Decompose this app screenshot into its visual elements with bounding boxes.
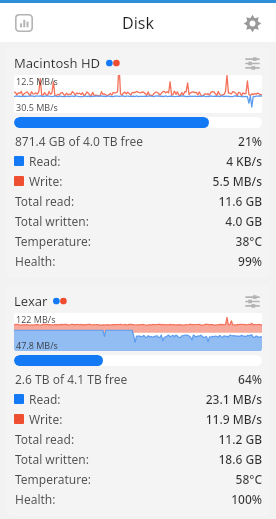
staticText: 11.6 GB: [218, 193, 262, 209]
staticText: 12.5 MB/s: [16, 75, 58, 87]
staticText: Write:: [29, 411, 63, 427]
staticText: Total written:: [15, 451, 89, 467]
button[interactable]: Lexar: [6, 285, 270, 516]
staticText: Macintosh HD: [14, 54, 101, 72]
staticText: Read:: [29, 391, 61, 407]
button[interactable]: Health:: [14, 489, 262, 509]
staticText: Temperature:: [15, 233, 91, 249]
button[interactable]: 2.6 TB of 4.1 TB free: [14, 369, 262, 389]
staticText: 11.2 GB: [218, 431, 262, 447]
staticText: Health:: [15, 253, 56, 269]
staticText: Total read:: [15, 431, 75, 447]
staticText: Write:: [29, 173, 63, 189]
staticText: Total written:: [15, 213, 89, 229]
button[interactable]: Temperature:: [14, 231, 262, 251]
staticText: 871.4 GB of 4.0 TB free: [15, 133, 143, 149]
button[interactable]: Disk options: [242, 53, 262, 73]
button[interactable]: Statistics: [10, 9, 38, 37]
staticText: Temperature:: [15, 471, 91, 487]
button[interactable]: Total read:: [14, 429, 262, 449]
staticText: 4 KB/s: [226, 153, 262, 169]
staticText: 64%: [238, 371, 262, 387]
button[interactable]: Write:: [14, 171, 262, 191]
staticText: 23.1 MB/s: [205, 391, 262, 407]
staticText: 18.6 GB: [218, 451, 262, 467]
button[interactable]: Health:: [14, 251, 262, 271]
staticText: 99%: [238, 253, 262, 269]
staticText: 5.5 MB/s: [212, 173, 262, 189]
staticText: 100%: [231, 491, 262, 507]
staticText: Disk: [122, 12, 155, 34]
staticText: 38°C: [235, 233, 262, 249]
staticText: 47.8 MB/s: [16, 339, 58, 351]
button[interactable]: Disk options: [242, 291, 262, 311]
staticText: 21%: [238, 133, 262, 149]
staticText: 11.9 MB/s: [205, 411, 262, 427]
staticText: Total read:: [15, 193, 75, 209]
staticText: Health:: [15, 491, 56, 507]
staticText: Lexar: [14, 292, 48, 310]
button[interactable]: Macintosh HD: [6, 47, 270, 278]
staticText: Read:: [29, 153, 61, 169]
button[interactable]: Total read:: [14, 191, 262, 211]
staticText: 30.5 MB/s: [16, 101, 58, 113]
button[interactable]: Read:: [14, 389, 262, 409]
button[interactable]: Temperature:: [14, 469, 262, 489]
button[interactable]: Write:: [14, 409, 262, 429]
button[interactable]: Read:: [14, 151, 262, 171]
button[interactable]: Settings: [238, 9, 266, 37]
button[interactable]: Total written:: [14, 449, 262, 469]
staticText: 2.6 TB of 4.1 TB free: [15, 371, 128, 387]
button[interactable]: 871.4 GB of 4.0 TB free: [14, 131, 262, 151]
staticText: 4.0 GB: [225, 213, 262, 229]
button[interactable]: Total written:: [14, 211, 262, 231]
staticText: 58°C: [235, 471, 262, 487]
staticText: 122 MB/s: [16, 313, 56, 325]
